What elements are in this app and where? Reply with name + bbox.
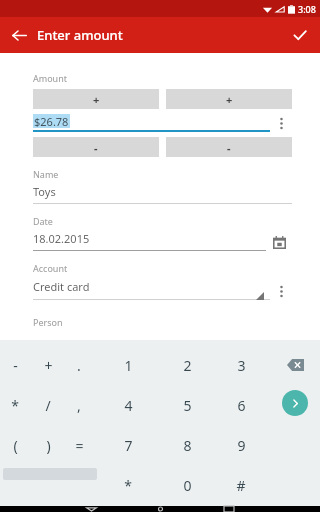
button[interactable]: Pick date: [266, 233, 292, 251]
staticText: -: [227, 140, 231, 155]
staticText: Amount: [33, 72, 67, 84]
staticText: *: [124, 476, 132, 495]
button[interactable]: 7: [108, 428, 148, 462]
staticText: 5: [183, 396, 192, 415]
button[interactable]: 5: [167, 388, 207, 422]
button[interactable]: #: [221, 468, 261, 502]
staticText: 2: [183, 356, 192, 375]
staticText: .: [77, 356, 81, 375]
button[interactable]: *: [108, 468, 148, 502]
staticText: #: [236, 476, 246, 495]
button[interactable]: Next: [282, 390, 308, 416]
staticText: -: [94, 140, 98, 155]
staticText: +: [93, 92, 100, 107]
button[interactable]: +: [166, 89, 292, 109]
button[interactable]: .: [59, 348, 99, 382]
staticText: 3:08: [298, 3, 316, 15]
staticText: 0: [183, 476, 192, 495]
staticText: 18.02.2015: [33, 231, 90, 246]
button[interactable]: Home: [147, 506, 173, 512]
button[interactable]: Recents: [216, 506, 242, 512]
button[interactable]: 0: [167, 468, 207, 502]
staticText: +: [226, 92, 233, 107]
staticText: Credit card: [33, 279, 90, 294]
staticText: Account: [33, 262, 68, 274]
staticText: Date: [33, 215, 53, 227]
staticText: =: [75, 436, 84, 455]
button[interactable]: +: [33, 89, 159, 109]
button[interactable]: Back: [6, 22, 32, 48]
button[interactable]: Confirm: [287, 22, 313, 48]
staticText: 8: [183, 436, 192, 455]
button[interactable]: +: [28, 348, 68, 382]
staticText: (: [13, 436, 18, 455]
button[interactable]: 1: [108, 348, 148, 382]
staticText: 1: [124, 356, 133, 375]
button[interactable]: -: [33, 137, 159, 157]
button[interactable]: Account options: [270, 282, 292, 300]
staticText: -: [13, 356, 18, 375]
staticText: 9: [237, 436, 246, 455]
staticText: /: [45, 396, 51, 415]
button[interactable]: 2: [167, 348, 207, 382]
button[interactable]: *: [0, 388, 35, 422]
button[interactable]: Back: [78, 506, 104, 512]
button[interactable]: Backspace: [278, 348, 312, 382]
button[interactable]: 4: [108, 388, 148, 422]
button[interactable]: -: [166, 137, 292, 157]
staticText: $26.78: [34, 114, 69, 128]
staticText: Name: [33, 168, 59, 180]
staticText: Enter amount: [37, 26, 123, 44]
staticText: 7: [124, 436, 133, 455]
button[interactable]: -: [0, 348, 35, 382]
button[interactable]: More options: [270, 114, 292, 132]
staticText: 4: [124, 396, 133, 415]
staticText: +: [44, 356, 53, 375]
button[interactable]: ): [28, 428, 68, 462]
button[interactable]: 9: [221, 428, 261, 462]
button[interactable]: (: [0, 428, 35, 462]
staticText: ,: [77, 396, 81, 415]
staticText: *: [11, 396, 19, 415]
staticText: 6: [237, 396, 246, 415]
button[interactable]: =: [59, 428, 99, 462]
button[interactable]: ,: [59, 388, 99, 422]
button[interactable]: 6: [221, 388, 261, 422]
staticText: ): [46, 436, 51, 455]
button[interactable]: /: [28, 388, 68, 422]
staticText: Toys: [33, 184, 56, 199]
staticText: 3: [237, 356, 246, 375]
staticText: Person: [33, 316, 63, 328]
button[interactable]: 8: [167, 428, 207, 462]
button[interactable]: 3: [221, 348, 261, 382]
